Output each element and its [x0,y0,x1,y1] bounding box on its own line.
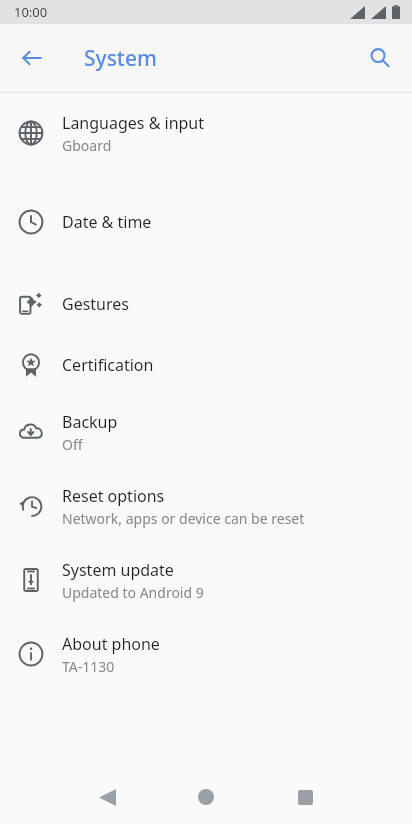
staticText: Gboard [62,136,112,155]
button[interactable]: Back [10,36,54,80]
staticText: Backup [62,411,118,433]
button[interactable]: Date & time [0,170,412,273]
staticText: TA-1130 [62,657,115,676]
button[interactable]: Recent apps [282,774,328,820]
staticText: Network, apps or device can be reset [62,509,305,528]
staticText: Languages & input [62,112,205,134]
button[interactable]: Home [183,774,229,820]
staticText: Certification [62,354,154,376]
button[interactable]: Certification [0,334,412,395]
button[interactable]: Backup [0,395,412,469]
button[interactable]: Back [84,774,130,820]
staticText: System [84,44,157,73]
button[interactable]: About phone [0,617,412,691]
staticText: System update [62,559,174,581]
staticText: Off [62,435,83,454]
button[interactable]: Languages & input [0,96,412,170]
staticText: 10:00 [14,3,48,21]
staticText: Reset options [62,485,165,507]
staticText: Gestures [62,293,129,315]
button[interactable]: System update [0,543,412,617]
staticText: About phone [62,633,160,655]
button[interactable]: Search [358,36,402,80]
button[interactable]: Reset options [0,469,412,543]
staticText: Date & time [62,211,152,233]
staticText: Updated to Android 9 [62,583,204,602]
button[interactable]: Gestures [0,273,412,334]
